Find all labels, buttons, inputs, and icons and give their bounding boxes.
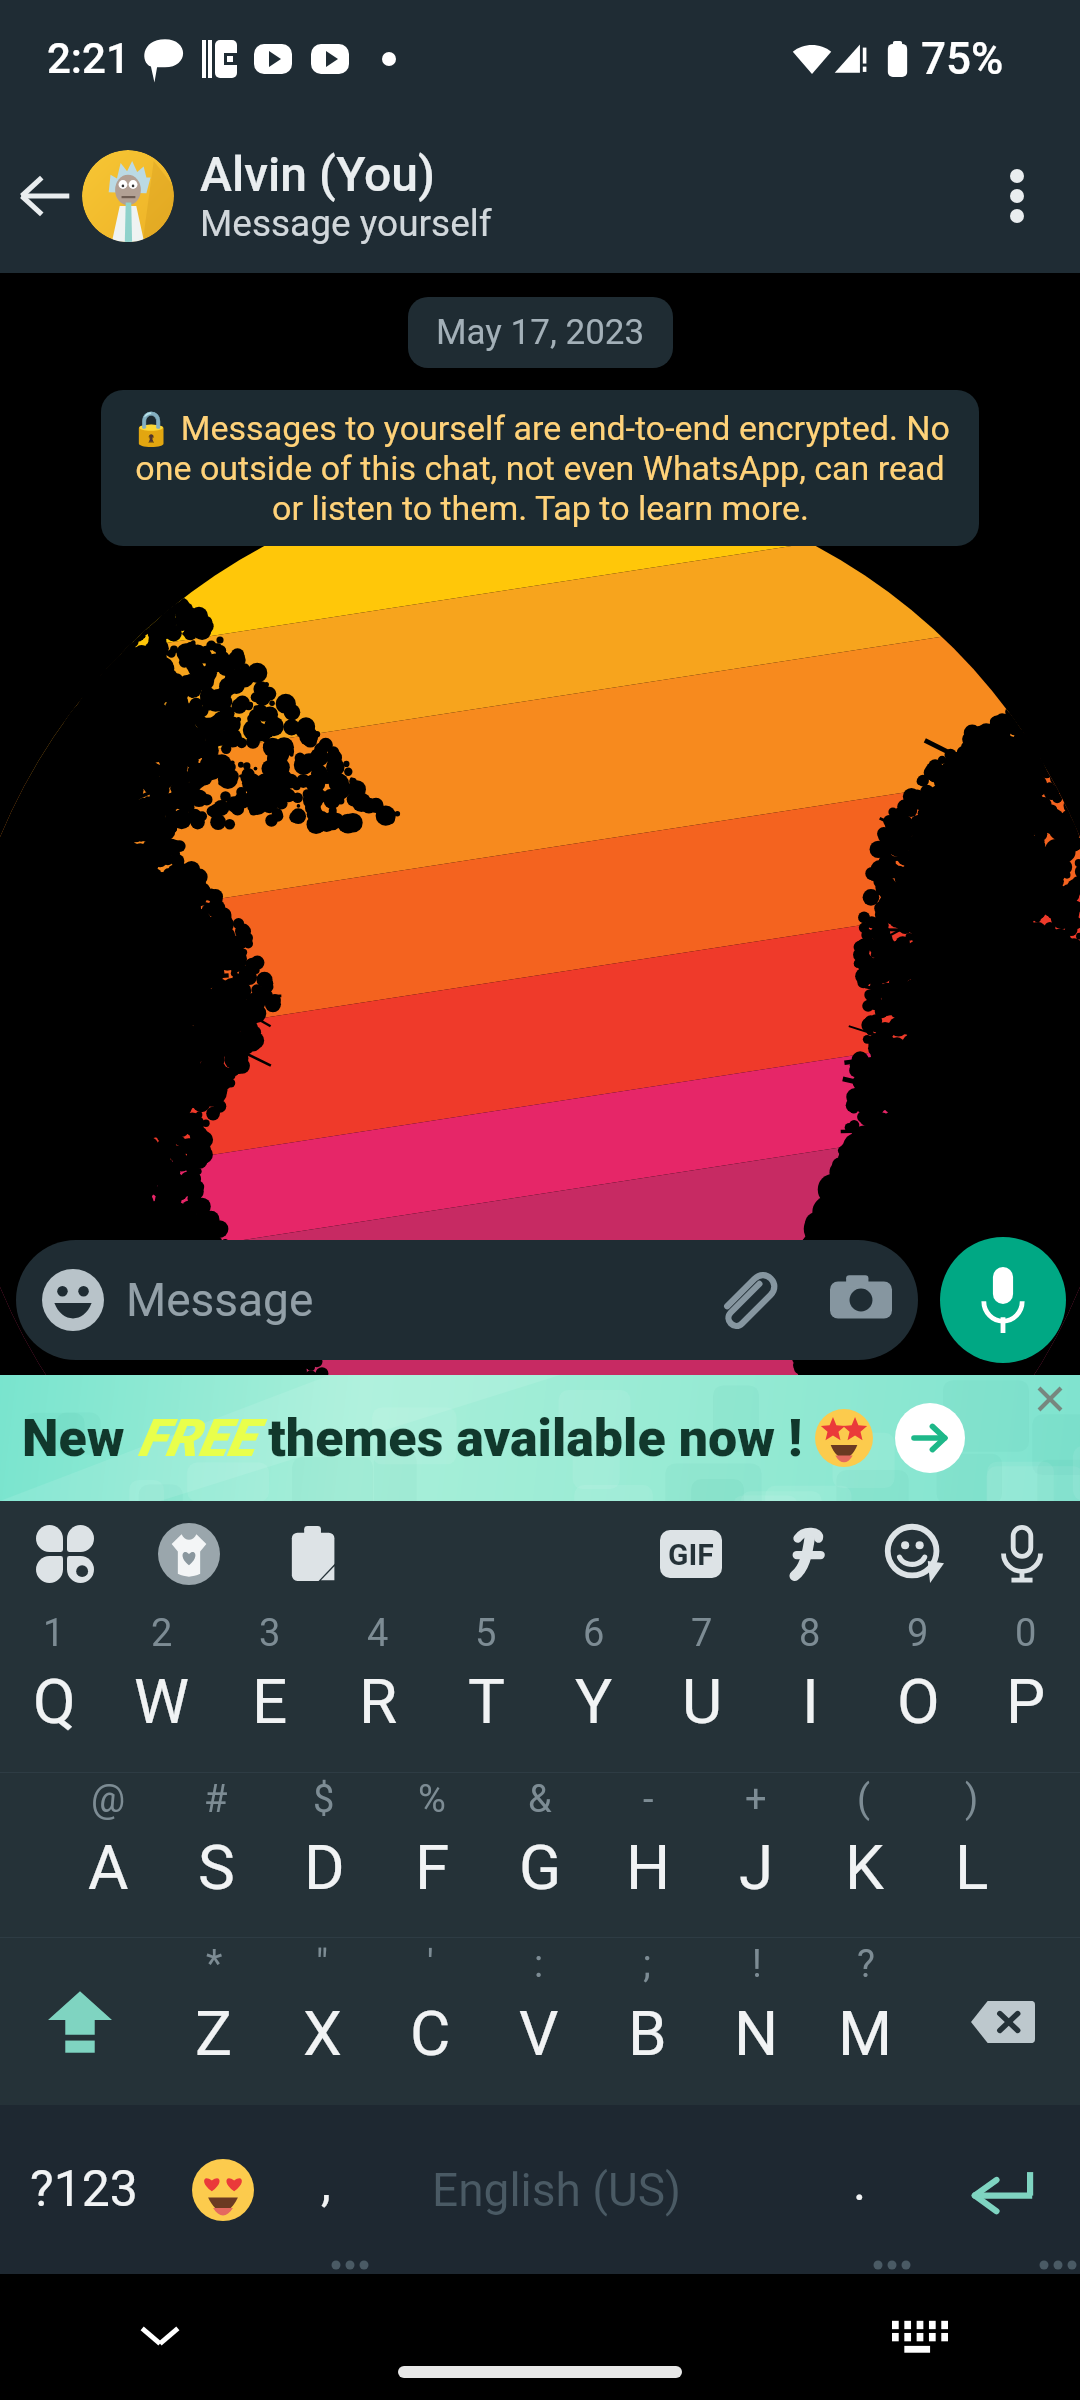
button[interactable]: ?123: [0, 2105, 168, 2274]
staticText: 8: [799, 1611, 821, 1656]
staticText: &: [528, 1777, 552, 1822]
staticText: 🔒 Messages to yourself are end-to-end en…: [130, 408, 950, 448]
button[interactable]: ,: [278, 2105, 374, 2274]
staticText: ": [316, 1942, 329, 1987]
button[interactable]: ): [918, 1773, 1026, 1937]
button[interactable]: 6: [540, 1607, 648, 1772]
button[interactable]: Voice message: [940, 1237, 1066, 1363]
staticText: English (US): [432, 2163, 682, 2217]
button[interactable]: %: [378, 1773, 486, 1937]
button[interactable]: 🔒 Messages to yourself are end-to-end en…: [101, 390, 979, 546]
button[interactable]: (: [810, 1773, 918, 1937]
staticText: +: [745, 1777, 767, 1822]
button[interactable]: Clipboard: [284, 1526, 340, 1582]
staticText: Message yourself: [200, 202, 492, 245]
button[interactable]: -: [594, 1773, 702, 1937]
button[interactable]: !: [702, 1938, 811, 2105]
button[interactable]: Voice input: [1000, 1525, 1044, 1583]
button[interactable]: Font: [778, 1528, 830, 1580]
button[interactable]: Alvin (You): [200, 146, 980, 245]
button[interactable]: Themes: [36, 1525, 94, 1583]
staticText: F: [415, 1831, 450, 1904]
button[interactable]: .: [800, 2105, 920, 2274]
staticText: M: [838, 1997, 893, 2070]
staticText: Message: [126, 1273, 716, 1327]
staticText: !: [752, 1942, 762, 1987]
staticText: (: [857, 1777, 871, 1822]
staticText: *: [206, 1942, 223, 1987]
button[interactable]: Back: [8, 159, 82, 233]
staticText: %: [418, 1777, 446, 1822]
button[interactable]: 4: [324, 1607, 432, 1772]
staticText: -: [643, 1777, 654, 1822]
button[interactable]: Switch keyboard: [880, 2296, 960, 2376]
staticText: B: [628, 1997, 667, 2070]
staticText: ?: [857, 1942, 875, 1987]
button[interactable]: 3: [216, 1607, 324, 1772]
button[interactable]: Enter: [920, 2105, 1080, 2274]
button[interactable]: 1: [0, 1607, 108, 1772]
staticText: D: [304, 1831, 345, 1904]
staticText: 5: [475, 1611, 497, 1656]
button[interactable]: ': [376, 1938, 484, 2105]
staticText: May 17, 2023: [436, 312, 645, 353]
button[interactable]: $: [270, 1773, 378, 1937]
button[interactable]: Attach: [716, 1269, 778, 1331]
staticText: 2: [151, 1611, 173, 1656]
staticText: GIF: [668, 1537, 714, 1572]
staticText: :: [534, 1942, 544, 1987]
button[interactable]: Open offer: [895, 1403, 965, 1473]
button[interactable]: *: [160, 1938, 268, 2105]
staticText: Z: [195, 1997, 233, 2070]
button[interactable]: #: [162, 1773, 270, 1937]
staticText: C: [410, 1997, 451, 2070]
button[interactable]: Close ad: [1028, 1377, 1072, 1421]
button[interactable]: More options: [980, 159, 1054, 233]
button[interactable]: 0: [972, 1607, 1080, 1772]
staticText: I: [802, 1665, 819, 1738]
button[interactable]: New: [0, 1375, 1080, 1501]
button[interactable]: ;: [593, 1938, 702, 2105]
button[interactable]: [82, 150, 174, 242]
staticText: K: [845, 1831, 884, 1904]
button[interactable]: +: [702, 1773, 810, 1937]
staticText: V: [519, 1997, 559, 2070]
button[interactable]: ": [268, 1938, 376, 2105]
button[interactable]: :: [484, 1938, 593, 2105]
button[interactable]: Camera: [830, 1269, 892, 1331]
button[interactable]: May 17, 2023: [408, 297, 673, 368]
staticText: W: [134, 1665, 190, 1738]
button[interactable]: &: [486, 1773, 594, 1937]
staticText: G: [519, 1831, 562, 1904]
button[interactable]: 9: [864, 1607, 972, 1772]
button[interactable]: Message: [16, 1240, 918, 1360]
button[interactable]: 5: [432, 1607, 540, 1772]
button[interactable]: 2: [108, 1607, 216, 1772]
button[interactable]: Hide keyboard: [120, 2296, 200, 2376]
button[interactable]: ?: [811, 1938, 920, 2105]
staticText: 4: [367, 1611, 389, 1656]
button[interactable]: Shift: [0, 1938, 160, 2105]
staticText: @: [91, 1777, 126, 1822]
button[interactable]: @: [54, 1773, 162, 1937]
staticText: $: [313, 1777, 335, 1822]
button[interactable]: Emoji: [886, 1525, 944, 1583]
staticText: P: [1006, 1665, 1046, 1738]
button[interactable]: English (US): [374, 2105, 800, 2274]
staticText: L: [955, 1831, 989, 1904]
staticText: T: [468, 1665, 505, 1738]
staticText: N: [734, 1997, 779, 2070]
staticText: 6: [583, 1611, 605, 1656]
button[interactable]: GIF: [660, 1530, 722, 1578]
button[interactable]: 8: [756, 1607, 864, 1772]
staticText: E: [252, 1665, 288, 1738]
staticText: 3: [259, 1611, 281, 1656]
staticText: ?123: [30, 2160, 138, 2219]
button[interactable]: Backspace: [920, 1938, 1080, 2105]
button[interactable]: 7: [648, 1607, 756, 1772]
button[interactable]: Stickers: [158, 1523, 220, 1585]
staticText: New: [22, 1408, 138, 1469]
staticText: themes available now !: [255, 1408, 803, 1469]
staticText: ;: [643, 1942, 652, 1987]
button[interactable]: Emoji: [168, 2105, 278, 2274]
